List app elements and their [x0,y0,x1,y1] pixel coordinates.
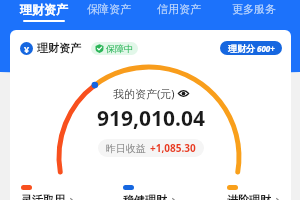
staticText: 进阶理财 [227,193,271,200]
staticText: ¥ [24,43,30,55]
staticText: 理财资产 [37,41,81,55]
button[interactable]: 理财分 [220,41,282,55]
staticText: 昨日收益 [106,142,146,155]
staticText: +1,085.30 [150,141,196,155]
staticText: 稳健理财 [123,193,167,200]
button[interactable]: 稳健理财 [123,185,177,200]
staticText: 理财分 [228,43,255,54]
staticText: 灵活取用 [21,193,65,200]
button[interactable]: 灵活取用 [21,185,75,200]
other: Toggle amount visibility [178,88,189,99]
button[interactable]: 理财资产 [20,2,68,22]
staticText: 600+ [257,43,275,54]
button[interactable]: 信用资产 [157,2,201,16]
staticText: 919,010.04 [97,104,205,133]
staticText: 我的资产(元) [113,86,175,101]
button[interactable]: 更多服务 [232,2,276,16]
staticText: 保障资产 [87,2,131,16]
staticText: 信用资产 [157,2,201,16]
button[interactable]: 昨日收益 [98,139,204,157]
button[interactable]: 进阶理财 [227,185,281,200]
staticText: 理财资产 [20,2,68,17]
button[interactable]: 保障中 [91,42,138,55]
staticText: 更多服务 [232,2,276,16]
button[interactable]: 保障资产 [87,2,131,16]
staticText: 保障中 [106,43,133,54]
